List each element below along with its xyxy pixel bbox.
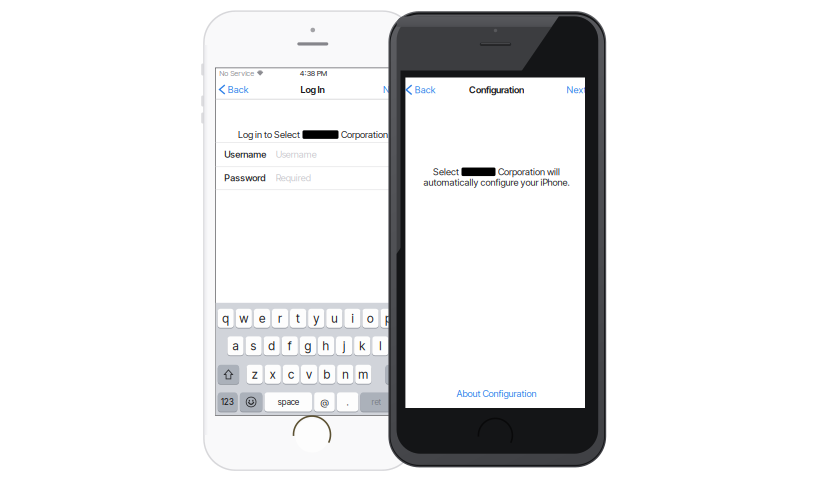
staticText: 4:38 PM bbox=[300, 69, 327, 78]
staticText: About Configuration bbox=[456, 388, 536, 399]
staticText: d bbox=[268, 339, 275, 353]
staticText: r bbox=[278, 311, 282, 325]
staticText: c bbox=[288, 367, 294, 381]
button[interactable]: h bbox=[318, 336, 334, 355]
staticText: Back bbox=[415, 84, 436, 95]
staticText: No Service bbox=[219, 69, 254, 78]
staticText: Configuration bbox=[469, 84, 524, 96]
button[interactable]: s bbox=[245, 336, 262, 355]
staticText: p bbox=[385, 311, 392, 325]
button[interactable]: Numbers bbox=[218, 392, 237, 412]
staticText: b bbox=[324, 367, 331, 381]
button[interactable]: a bbox=[227, 336, 244, 355]
staticText: i bbox=[351, 311, 353, 325]
button[interactable]: d bbox=[264, 336, 280, 355]
staticText: Log in to Select bbox=[238, 129, 300, 140]
button[interactable]: Delete bbox=[385, 365, 407, 384]
button[interactable]: o bbox=[362, 309, 379, 328]
button[interactable]: Next bbox=[546, 83, 586, 96]
button[interactable]: return bbox=[360, 392, 392, 412]
staticText: Back bbox=[228, 84, 249, 95]
button[interactable]: k bbox=[354, 336, 370, 355]
button[interactable]: q bbox=[218, 309, 234, 328]
button[interactable]: m bbox=[355, 365, 371, 384]
staticText: h bbox=[322, 339, 329, 353]
staticText: l bbox=[379, 339, 381, 353]
button[interactable]: y bbox=[308, 309, 324, 328]
button[interactable]: w bbox=[236, 309, 252, 328]
button[interactable]: i bbox=[344, 309, 360, 328]
button[interactable]: Emoji bbox=[240, 392, 262, 412]
button[interactable]: space bbox=[264, 392, 312, 412]
staticText: @ bbox=[320, 396, 328, 408]
staticText: Corporation bbox=[341, 129, 388, 140]
staticText: Next bbox=[383, 84, 403, 95]
staticText: Next bbox=[566, 84, 586, 95]
staticText: automatically configure your iPhone. bbox=[423, 177, 569, 188]
button[interactable]: b bbox=[319, 365, 335, 384]
staticText: Log In bbox=[301, 84, 325, 95]
button[interactable]: period bbox=[337, 392, 358, 412]
button[interactable]: Back bbox=[406, 83, 446, 96]
button[interactable]: Shift bbox=[218, 365, 239, 384]
staticText: k bbox=[359, 339, 365, 353]
button[interactable]: n bbox=[337, 365, 353, 384]
button[interactable]: Back bbox=[219, 83, 259, 96]
staticText: y bbox=[313, 311, 319, 325]
button[interactable]: z bbox=[247, 365, 263, 384]
staticText: n bbox=[342, 367, 348, 381]
staticText: Password bbox=[224, 172, 265, 184]
staticText: e bbox=[259, 311, 265, 325]
staticText: v bbox=[306, 367, 312, 381]
staticText: Corporation will bbox=[498, 166, 560, 177]
staticText: ret bbox=[371, 397, 381, 407]
button[interactable]: About Configuration bbox=[456, 388, 536, 399]
staticText: . bbox=[347, 396, 349, 408]
staticText: space bbox=[278, 397, 299, 407]
button[interactable]: j bbox=[336, 336, 352, 355]
button[interactable]: v bbox=[301, 365, 317, 384]
staticText: a bbox=[232, 339, 238, 353]
staticText: t bbox=[296, 311, 300, 325]
button[interactable]: at sign bbox=[314, 392, 335, 412]
staticText: o bbox=[367, 311, 374, 325]
button[interactable]: f bbox=[282, 336, 298, 355]
staticText: Required bbox=[276, 172, 311, 184]
button[interactable]: r bbox=[272, 309, 288, 328]
staticText: Username bbox=[276, 149, 317, 160]
staticText: j bbox=[343, 339, 345, 353]
button[interactable]: u bbox=[326, 309, 342, 328]
staticText: u bbox=[331, 311, 337, 325]
staticText: 123 bbox=[221, 397, 234, 407]
staticText: x bbox=[270, 367, 276, 381]
button[interactable]: l bbox=[372, 336, 388, 355]
staticText: m bbox=[358, 367, 368, 381]
staticText: Username bbox=[224, 149, 266, 160]
button[interactable]: g bbox=[300, 336, 316, 355]
staticText: z bbox=[252, 367, 258, 381]
button[interactable]: e bbox=[254, 309, 270, 328]
button[interactable]: t bbox=[290, 309, 306, 328]
button[interactable]: x bbox=[265, 365, 281, 384]
staticText: f bbox=[288, 339, 292, 353]
staticText: g bbox=[304, 339, 311, 353]
staticText: w bbox=[239, 311, 248, 325]
button[interactable]: p bbox=[380, 309, 397, 328]
button[interactable]: Next bbox=[363, 83, 403, 96]
button[interactable]: c bbox=[283, 365, 299, 384]
staticText: q bbox=[222, 311, 229, 325]
staticText: Select bbox=[433, 166, 459, 177]
staticText: s bbox=[251, 339, 257, 353]
